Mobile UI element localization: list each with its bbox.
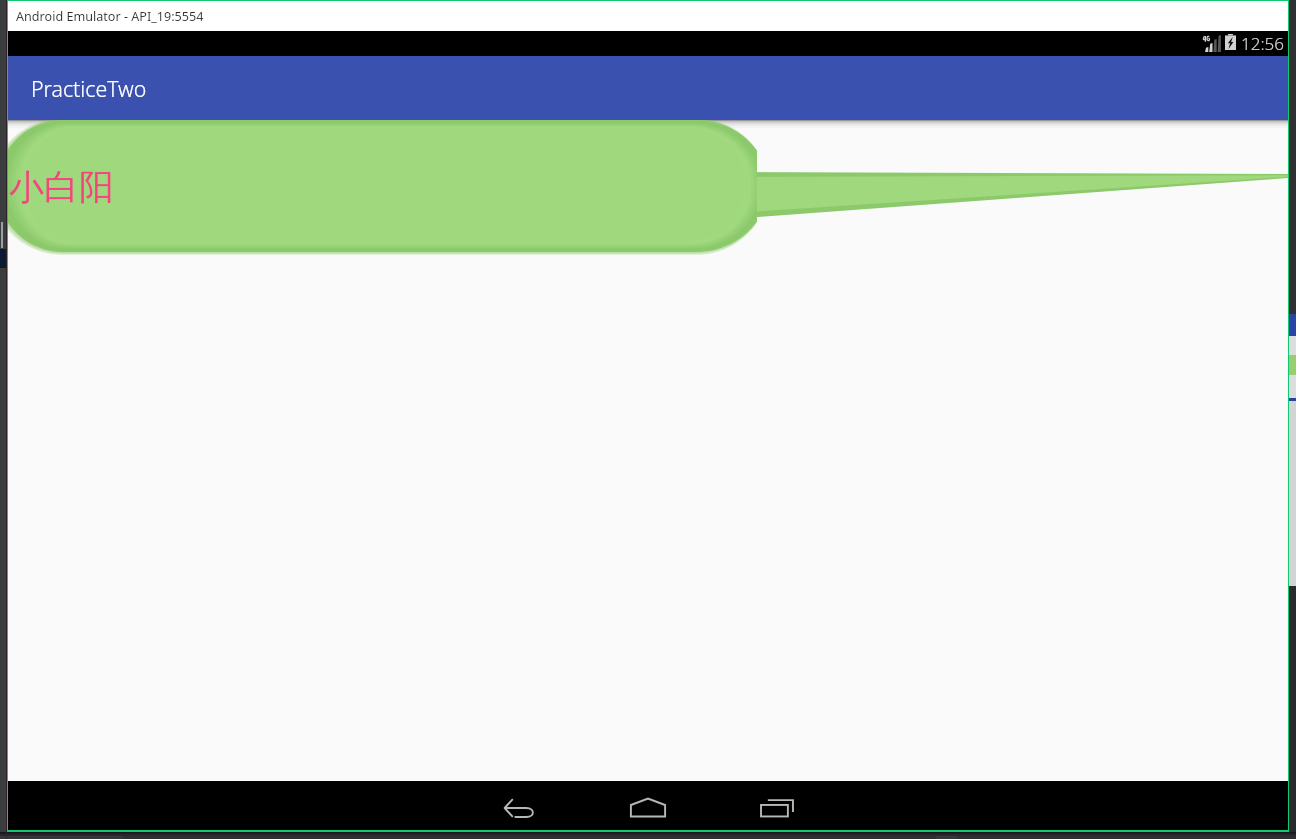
button[interactable]: 小白阳 bbox=[9, 165, 114, 209]
button[interactable]: Home bbox=[606, 781, 690, 830]
staticText: Android Emulator - API_19:5554 bbox=[16, 8, 204, 25]
button[interactable]: Back bbox=[478, 781, 562, 830]
staticText: PracticeTwo bbox=[31, 74, 147, 103]
staticText: 12:56 bbox=[1241, 32, 1284, 55]
button[interactable]: PracticeTwo bbox=[8, 56, 1288, 120]
button[interactable]: Recent apps bbox=[735, 781, 819, 830]
